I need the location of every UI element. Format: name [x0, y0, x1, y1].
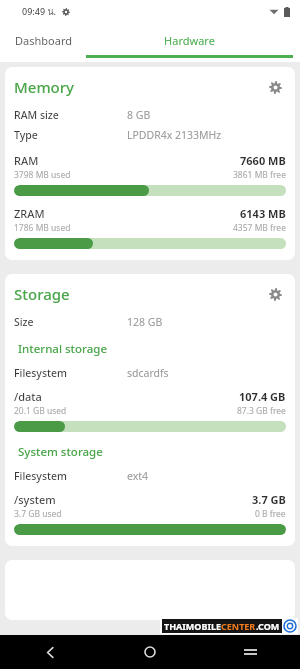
- staticText: sdcardfs: [127, 366, 169, 380]
- staticText: ZRAM: [14, 206, 45, 221]
- staticText: 09:49 น.: [22, 5, 56, 19]
- staticText: Dashboard: [15, 33, 72, 48]
- staticText: Storage: [14, 284, 70, 304]
- staticText: Internal storage: [18, 341, 107, 357]
- staticText: RAM size: [14, 108, 59, 122]
- staticText: THAIMOBILE: [164, 620, 221, 632]
- staticText: 8 GB: [127, 108, 151, 122]
- staticText: Size: [14, 315, 34, 329]
- staticText: 128 GB: [127, 315, 163, 329]
- button[interactable]: Hardware: [86, 24, 293, 62]
- staticText: 0 B free: [255, 508, 286, 520]
- staticText: System storage: [18, 444, 103, 460]
- staticText: CENTER: [221, 620, 256, 632]
- staticText: .COM: [256, 620, 280, 632]
- button[interactable]: Home: [132, 635, 168, 669]
- staticText: Memory: [14, 77, 75, 97]
- staticText: Hardware: [164, 33, 215, 48]
- staticText: ext4: [127, 469, 149, 483]
- staticText: /data: [14, 389, 42, 404]
- button[interactable]: Memory settings: [264, 76, 286, 98]
- staticText: Type: [14, 128, 38, 142]
- staticText: Filesystem: [14, 469, 67, 483]
- staticText: 87.3 GB free: [237, 405, 286, 417]
- button[interactable]: Storage settings: [264, 283, 286, 305]
- staticText: 6143 MB: [240, 206, 286, 221]
- staticText: Filesystem: [14, 366, 67, 380]
- staticText: 20.1 GB used: [14, 405, 67, 417]
- staticText: 4357 MB free: [233, 222, 286, 234]
- staticText: 3.7 GB: [252, 492, 286, 507]
- staticText: 3.7 GB used: [14, 508, 62, 520]
- staticText: LPDDR4x 2133MHz: [127, 128, 222, 142]
- staticText: /system: [14, 492, 56, 507]
- staticText: 7660 MB: [240, 153, 286, 168]
- staticText: 3798 MB used: [14, 169, 71, 181]
- staticText: 107.4 GB: [239, 389, 286, 404]
- staticText: 1786 MB used: [14, 222, 71, 234]
- button[interactable]: Dashboard: [15, 24, 72, 62]
- button[interactable]: Recent apps: [232, 635, 268, 669]
- button[interactable]: Back: [32, 635, 68, 669]
- staticText: RAM: [14, 153, 39, 168]
- staticText: 3861 MB free: [233, 169, 286, 181]
